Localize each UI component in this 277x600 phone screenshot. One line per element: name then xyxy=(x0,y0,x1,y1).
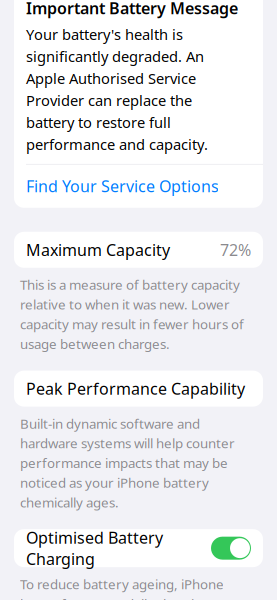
staticText: Optimised Battery Charging xyxy=(26,527,163,569)
staticText: Built-in dynamic software and hardware s… xyxy=(20,415,235,511)
staticText: Important Battery Message xyxy=(26,0,238,18)
button[interactable]: Maximum Capacity xyxy=(14,232,263,268)
staticText: Peak Performance Capability xyxy=(26,378,245,399)
button[interactable]: Find Your Service Options xyxy=(14,164,263,208)
staticText: Find Your Service Options xyxy=(26,175,219,197)
button[interactable]: Peak Performance Capability xyxy=(14,371,263,407)
staticText: 72% xyxy=(220,239,251,260)
staticText: This is a measure of battery capacity re… xyxy=(20,276,244,353)
staticText: Your battery's health is significantly d… xyxy=(26,25,208,154)
staticText: Maximum Capacity xyxy=(26,239,170,260)
staticText: To reduce battery ageing, iPhone learns … xyxy=(20,575,239,600)
button[interactable]: Optimised Battery Charging xyxy=(14,529,263,567)
